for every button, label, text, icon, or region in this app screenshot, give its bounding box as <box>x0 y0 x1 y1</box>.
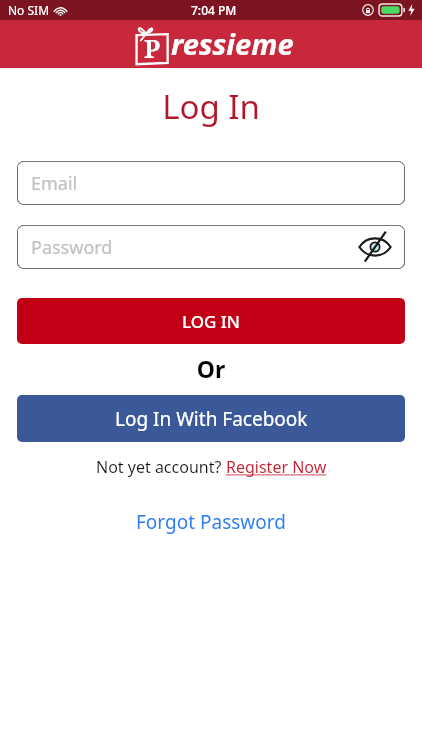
staticText: Not yet account? <box>96 456 226 478</box>
button[interactable]: Register Now <box>226 456 327 478</box>
staticText: Email <box>31 171 78 196</box>
staticText: LOG IN <box>182 310 241 333</box>
button[interactable]: LOG IN <box>17 298 405 344</box>
staticText: Log In <box>0 84 422 129</box>
staticText: No SIM <box>8 2 50 18</box>
staticText: Forgot Password <box>136 509 286 535</box>
button[interactable]: Show password <box>354 230 396 264</box>
staticText: Or <box>17 353 405 384</box>
button[interactable]: Password <box>17 225 405 269</box>
button[interactable]: Forgot Password <box>130 506 292 538</box>
staticText: Password <box>31 235 113 260</box>
staticText: 7:04 PM <box>191 2 237 18</box>
staticText: Register Now <box>226 456 327 478</box>
button[interactable]: Email <box>17 161 405 205</box>
staticText: P <box>144 31 160 65</box>
button[interactable]: Log In With Facebook <box>17 395 405 442</box>
staticText: Log In With Facebook <box>115 406 308 432</box>
staticText: ressieme <box>171 24 294 63</box>
